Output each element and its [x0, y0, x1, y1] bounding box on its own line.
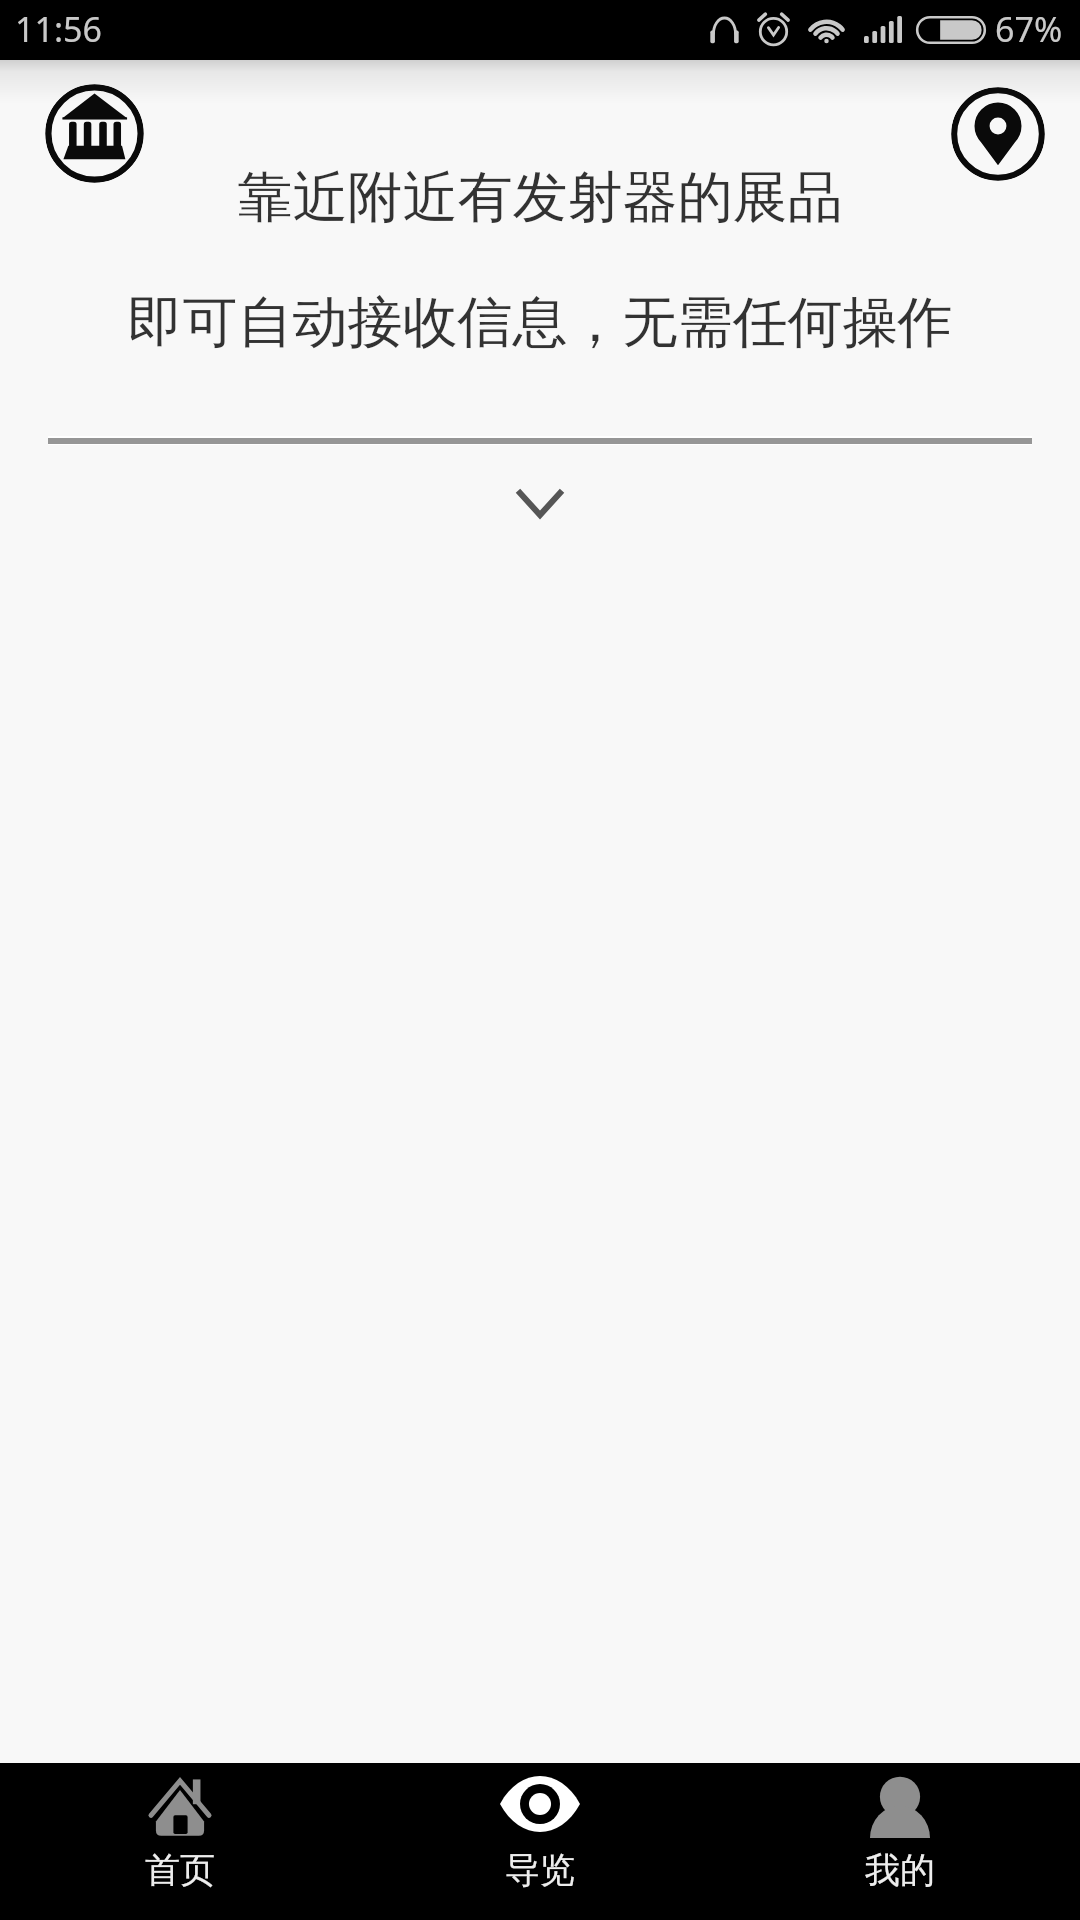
staticText: 67%: [995, 6, 1063, 52]
button[interactable]: Museum: [45, 84, 144, 183]
button[interactable]: Location: [951, 87, 1045, 181]
button[interactable]: 导览: [360, 1763, 720, 1825]
staticText: 首页: [145, 1848, 215, 1892]
staticText: 导览: [505, 1848, 575, 1892]
staticText: 靠近附近有发射器的展品: [0, 163, 1080, 232]
button[interactable]: Expand: [480, 470, 600, 540]
staticText: 我的: [865, 1848, 935, 1892]
staticText: 11:56: [15, 6, 102, 52]
button[interactable]: 我的: [720, 1763, 1080, 1825]
staticText: 即可自动接收信息，无需任何操作: [0, 288, 1080, 357]
button[interactable]: 首页: [0, 1763, 360, 1825]
